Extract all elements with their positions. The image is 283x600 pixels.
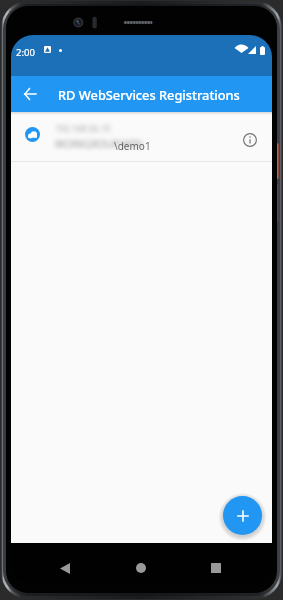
button[interactable]: Add [223, 496, 262, 535]
staticText: \demo1 [114, 139, 151, 153]
button[interactable]: Back [11, 76, 48, 112]
button[interactable]: Info [238, 128, 261, 151]
button[interactable]: Back [50, 553, 80, 583]
staticText: WORKGROUP\WIN [55, 137, 143, 151]
staticText: 2:00 [16, 46, 35, 59]
button[interactable]: Home [126, 553, 156, 583]
button[interactable]: 192.168.56.10 [11, 115, 272, 161]
staticText: RD WebServices Registrations [58, 86, 240, 103]
staticText: 192.168.56.10 [55, 123, 111, 135]
button[interactable]: Recent apps [201, 553, 231, 583]
